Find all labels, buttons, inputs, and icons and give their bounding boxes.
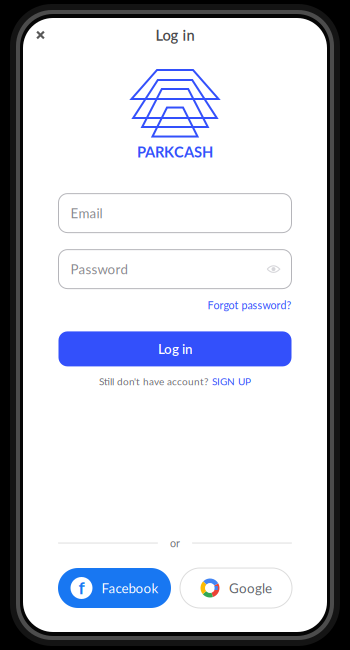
button[interactable]: Forgot password?: [207, 299, 291, 311]
button[interactable]: Google: [180, 568, 292, 608]
staticText: Email: [70, 205, 102, 221]
staticText: Log in: [158, 341, 192, 357]
staticText: Still don't have account?: [99, 375, 208, 387]
staticText: SIGN UP: [212, 375, 251, 387]
staticText: or: [170, 537, 180, 549]
staticText: Forgot password?: [207, 299, 291, 311]
staticText: f: [78, 577, 84, 598]
button[interactable]: Close: [23, 24, 58, 46]
button[interactable]: Show password: [266, 264, 280, 274]
staticText: Facebook: [101, 580, 158, 596]
staticText: Password: [70, 261, 127, 277]
staticText: PARKCASH: [137, 143, 213, 161]
button[interactable]: SIGN UP: [212, 375, 251, 387]
button[interactable]: f: [58, 568, 171, 608]
staticText: Log in: [155, 26, 194, 44]
staticText: Google: [229, 580, 272, 596]
button[interactable]: Log in: [58, 331, 291, 366]
